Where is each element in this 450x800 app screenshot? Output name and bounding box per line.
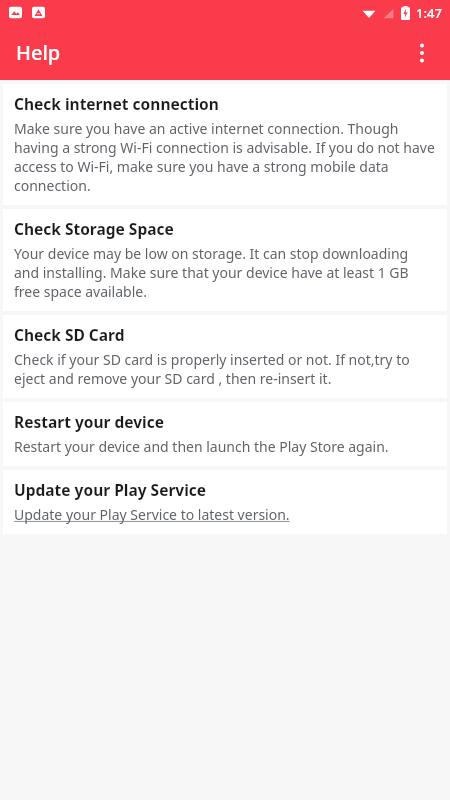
button[interactable]: Check SD Card	[3, 315, 447, 398]
staticText: Update your Play Service	[14, 479, 207, 500]
staticText: Check Storage Space	[14, 218, 174, 239]
staticText: Help	[16, 39, 61, 66]
button[interactable]: More options	[400, 31, 444, 75]
staticText: Make sure you have an active internet co…	[14, 119, 436, 195]
button[interactable]: Restart your device	[3, 402, 447, 466]
button[interactable]: Update your Play Service	[3, 470, 447, 534]
staticText: Your device may be low on storage. It ca…	[14, 244, 436, 301]
staticText: Check internet connection	[14, 93, 219, 114]
button[interactable]: Check Storage Space	[3, 209, 447, 311]
staticText: 1:47	[416, 4, 442, 22]
staticText: Check SD Card	[14, 324, 125, 345]
staticText: Update your Play Service to latest versi…	[14, 505, 290, 524]
staticText: Restart your device	[14, 411, 164, 432]
button[interactable]: Check internet connection	[3, 84, 447, 205]
staticText: Restart your device and then launch the …	[14, 437, 389, 456]
staticText: Check if your SD card is properly insert…	[14, 350, 436, 388]
